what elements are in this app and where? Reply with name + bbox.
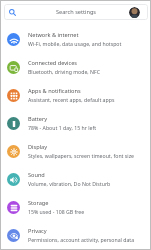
button[interactable]: Battery [0, 109, 151, 137]
staticText: Apps & notifications [28, 87, 81, 95]
staticText: Battery [28, 115, 48, 123]
button[interactable]: Privacy [0, 221, 151, 249]
staticText: Sound [28, 171, 45, 179]
button[interactable]: Display [0, 137, 151, 165]
button[interactable]: Apps & notifications [0, 81, 151, 109]
other: Search [9, 9, 16, 16]
staticText: 78% - About 1 day, 15 hr left [28, 124, 97, 131]
button[interactable]: Sound [0, 165, 151, 193]
staticText: Display [28, 143, 48, 151]
button[interactable]: Network & internet [0, 25, 151, 53]
staticText: Permissions, account activity, personal … [28, 236, 135, 243]
button[interactable]: Account [129, 7, 140, 18]
button[interactable]: Search settings [4, 4, 148, 20]
staticText: Network & internet [28, 31, 79, 39]
staticText: Connected devices [28, 59, 78, 67]
button[interactable]: Connected devices [0, 53, 151, 81]
staticText: Search settings [56, 8, 97, 16]
staticText: Assistant, recent apps, default apps [28, 96, 115, 103]
staticText: Wi-Fi, mobile, data usage, and hotspot [28, 40, 122, 47]
staticText: Privacy [28, 227, 47, 235]
staticText: 15% used - 108 GB free [28, 208, 85, 215]
staticText: Storage [28, 199, 49, 207]
staticText: Volume, vibration, Do Not Disturb [28, 180, 111, 187]
staticText: Bluetooth, driving mode, NFC [28, 68, 100, 75]
staticText: Styles, wallpapers, screen timeout, font… [28, 152, 135, 159]
button[interactable]: Storage [0, 193, 151, 221]
